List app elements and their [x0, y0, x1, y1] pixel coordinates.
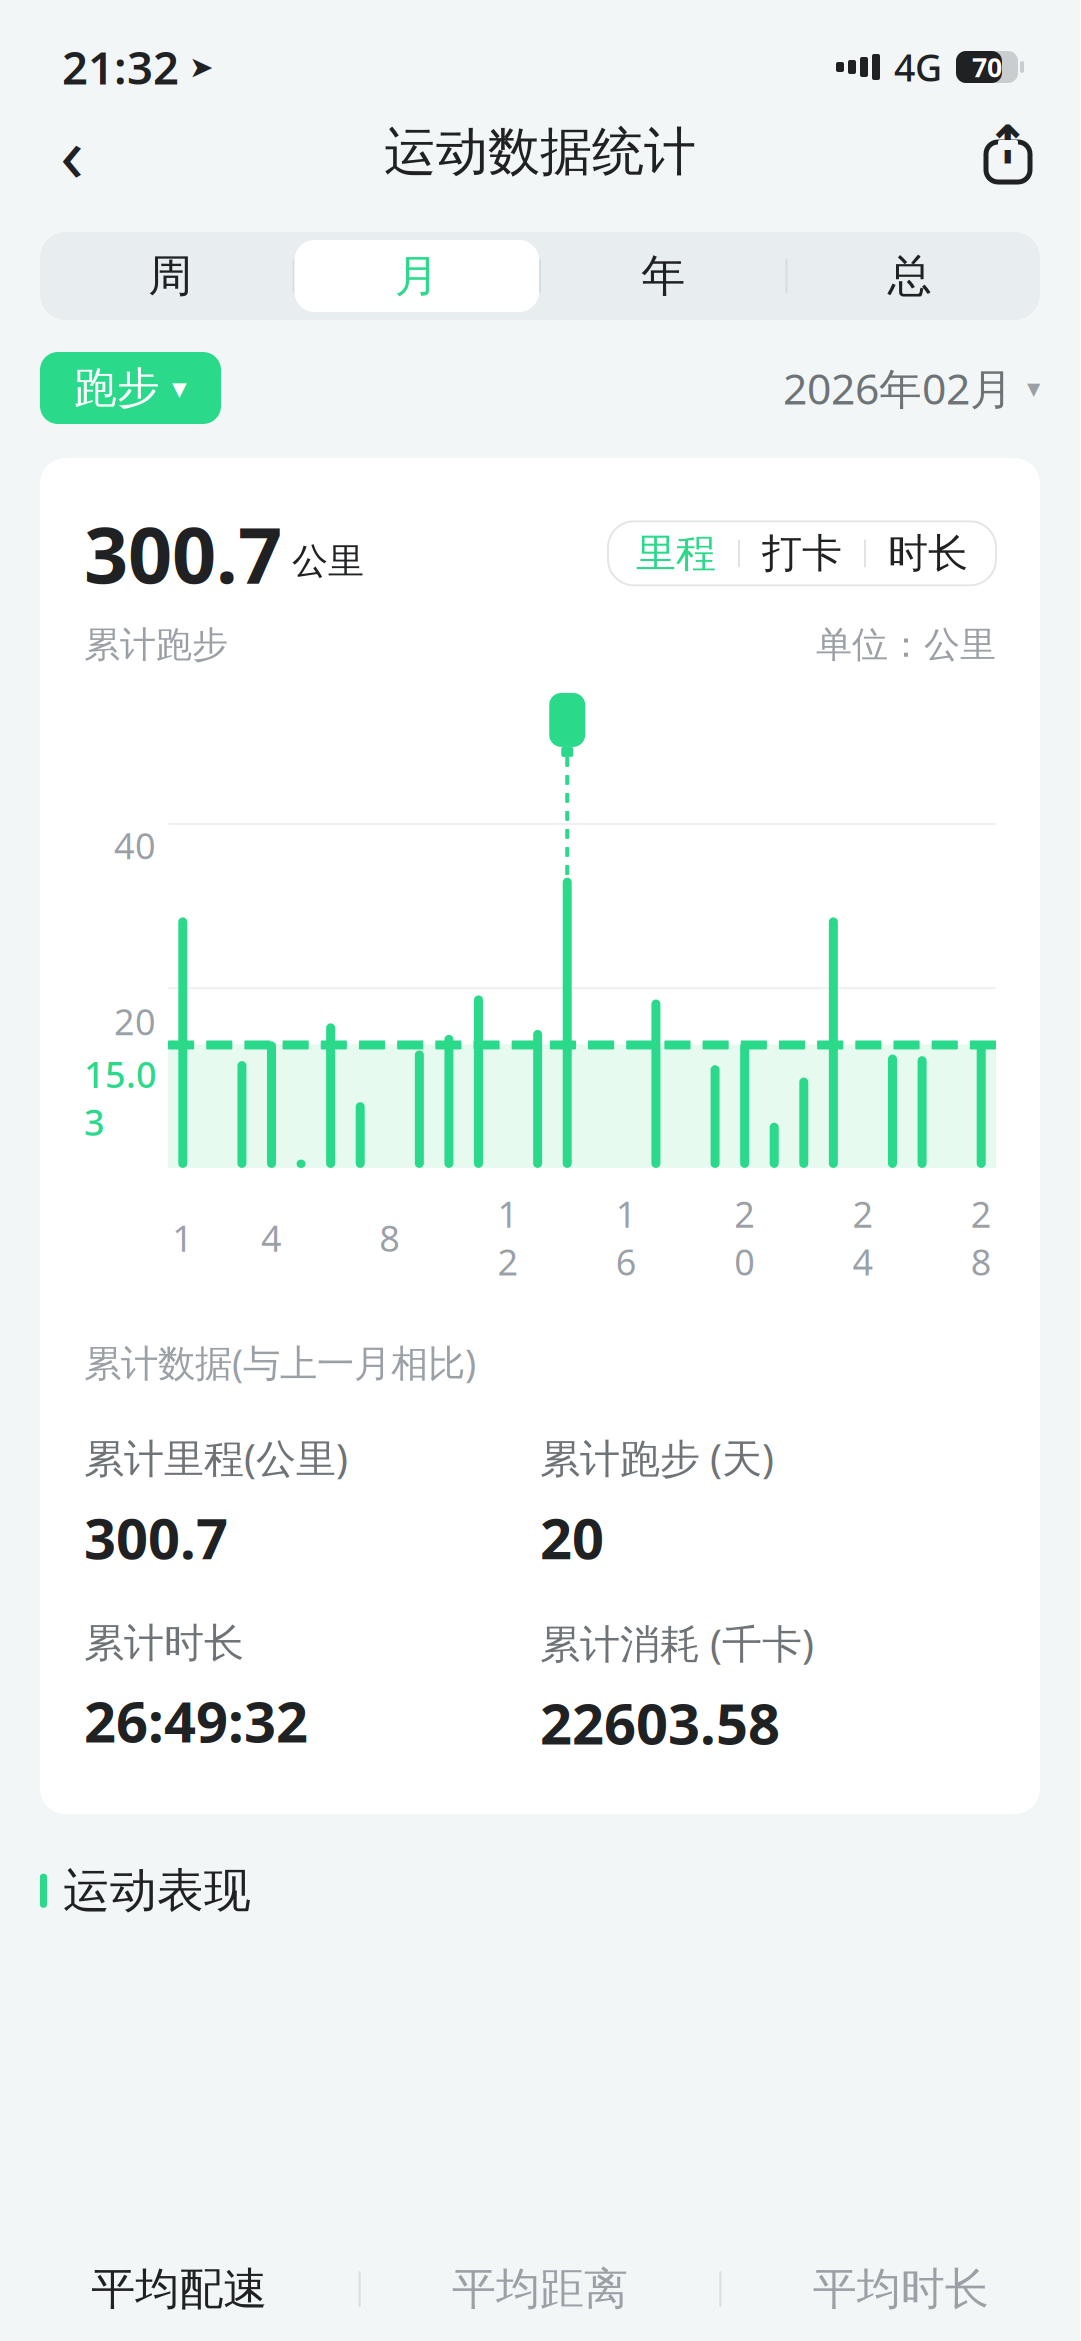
staticText: 时长: [888, 529, 968, 578]
staticText: 12: [498, 1190, 519, 1285]
button[interactable]: 平均距离: [361, 2255, 719, 2323]
staticText: 运动数据统计: [384, 120, 696, 184]
button[interactable]: 时长: [866, 531, 990, 575]
staticText: 累计消耗 (千卡): [540, 1617, 814, 1670]
button[interactable]: 跑步: [40, 352, 221, 424]
staticText: 总: [888, 249, 932, 303]
staticText: 4: [261, 1214, 282, 1262]
button[interactable]: 平均配速: [0, 2255, 359, 2323]
staticText: 70: [972, 49, 1002, 85]
staticText: 累计跑步: [84, 623, 228, 667]
staticText: 8: [379, 1214, 400, 1262]
staticText: ↑: [985, 115, 1030, 175]
staticText: 打卡: [762, 529, 842, 578]
staticText: 28: [971, 1190, 992, 1285]
staticText: 月: [395, 249, 439, 303]
staticText: 平均距离: [452, 2262, 628, 2316]
staticText: 26:49:32: [84, 1684, 308, 1758]
staticText: 15.03: [84, 1050, 157, 1146]
staticText: 21:32: [62, 37, 179, 97]
staticText: ▾: [172, 371, 187, 405]
staticText: 运动表现: [63, 1862, 251, 1919]
staticText: 累计跑步 (天): [540, 1431, 774, 1484]
staticText: 跑步: [74, 362, 160, 414]
button[interactable]: 里程: [614, 531, 738, 575]
button[interactable]: 年: [541, 240, 785, 312]
button[interactable]: 周: [48, 240, 292, 312]
staticText: 周: [148, 249, 192, 303]
button[interactable]: 2026年02月: [783, 352, 1040, 424]
staticText: 2026年02月: [783, 360, 1013, 416]
staticText: 16: [616, 1190, 637, 1285]
staticText: 平均时长: [813, 2262, 989, 2316]
staticText: 累计时长: [84, 1619, 244, 1668]
staticText: 1: [172, 1214, 193, 1262]
staticText: 40: [114, 821, 156, 869]
staticText: 累计里程(公里): [84, 1431, 348, 1484]
button[interactable]: 返回: [30, 110, 114, 194]
staticText: 4G: [894, 42, 942, 92]
button[interactable]: 分享: [966, 110, 1050, 194]
staticText: 年: [641, 249, 685, 303]
staticText: 单位：公里: [816, 623, 996, 667]
button[interactable]: 平均时长: [721, 2255, 1080, 2323]
staticText: ‹: [60, 101, 84, 203]
staticText: 20: [734, 1190, 755, 1285]
staticText: 里程: [636, 529, 716, 578]
button[interactable]: 打卡: [740, 531, 864, 575]
staticText: ➤: [189, 50, 214, 84]
staticText: 公里: [292, 539, 364, 583]
staticText: 300.7: [84, 1500, 228, 1575]
staticText: 20: [540, 1500, 604, 1575]
staticText: ▾: [1027, 373, 1040, 403]
staticText: 平均配速: [91, 2262, 267, 2316]
staticText: 24: [852, 1190, 873, 1285]
staticText: 300.7: [84, 502, 282, 605]
staticText: 20: [114, 997, 156, 1045]
button[interactable]: 总: [787, 240, 1032, 312]
staticText: 累计数据(与上一月相比): [84, 1337, 476, 1387]
staticText: 22603.58: [540, 1686, 780, 1760]
button[interactable]: 月: [294, 240, 539, 312]
